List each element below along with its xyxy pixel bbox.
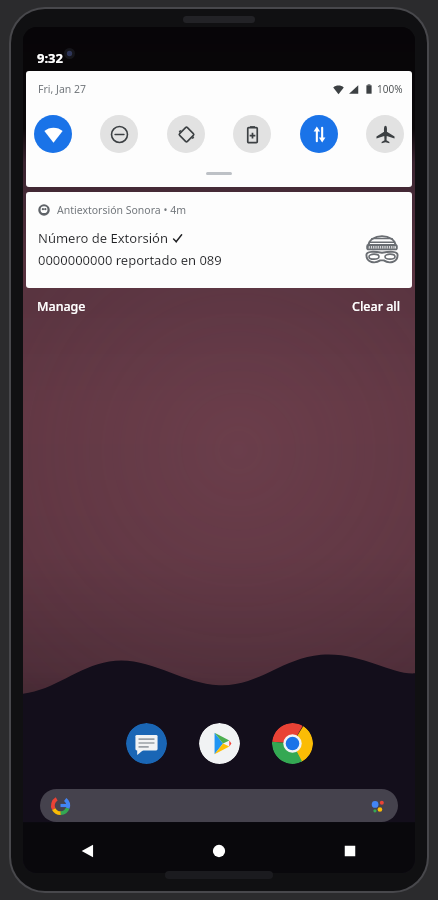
button[interactable]: Battery Saver bbox=[233, 115, 271, 153]
button[interactable]: Manage bbox=[26, 292, 97, 321]
staticText: Manage bbox=[37, 298, 86, 315]
button[interactable]: Clear all bbox=[341, 292, 412, 321]
button[interactable]: Recents bbox=[335, 836, 365, 866]
button[interactable]: Chrome bbox=[272, 723, 313, 764]
button[interactable]: Mobile data bbox=[300, 115, 338, 153]
button[interactable]: Airplane mode bbox=[366, 115, 404, 153]
staticText: 100% bbox=[377, 82, 403, 96]
staticText: Fri, Jan 27 bbox=[38, 82, 87, 96]
staticText: Clear all bbox=[352, 298, 401, 315]
button[interactable]: Messages bbox=[126, 723, 167, 764]
staticText: 9:32 bbox=[37, 49, 63, 67]
button[interactable]: Do not disturb bbox=[100, 115, 138, 153]
button[interactable]: Wi-Fi bbox=[34, 115, 72, 153]
button[interactable]: Play Store bbox=[199, 723, 240, 764]
staticText: Antiextorsión Sonora • 4m bbox=[57, 203, 186, 217]
button[interactable]: Back bbox=[73, 836, 103, 866]
button[interactable]: Antiextorsión Sonora • 4m bbox=[26, 192, 412, 288]
button[interactable]: Auto-rotate bbox=[167, 115, 205, 153]
staticText: 0000000000 reportado en 089 bbox=[38, 251, 222, 269]
button[interactable]: Search bbox=[40, 789, 398, 822]
staticText: Número de Extorsión bbox=[38, 229, 168, 247]
button[interactable]: Home bbox=[204, 836, 234, 866]
